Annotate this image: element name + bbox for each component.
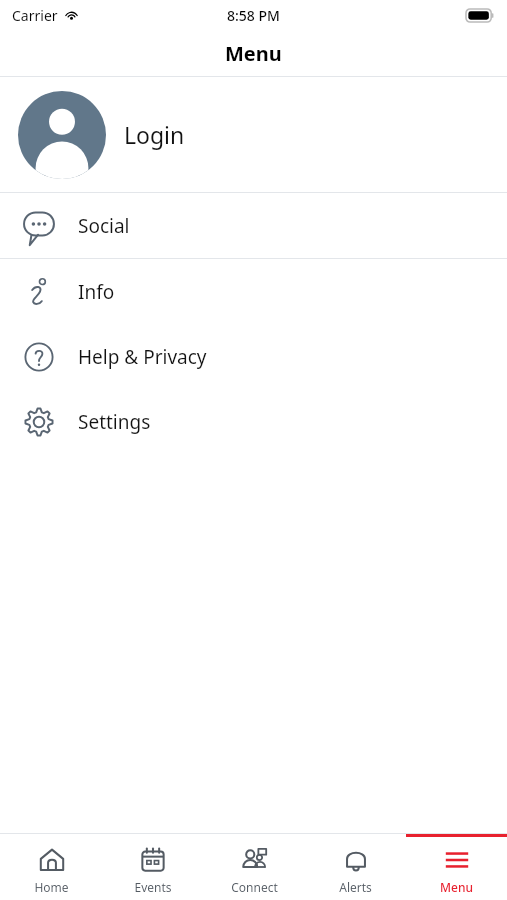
button[interactable]: Info	[0, 259, 507, 324]
staticText: Social	[78, 213, 130, 239]
button[interactable]: Home	[0, 834, 102, 900]
staticText: Connect	[231, 879, 278, 895]
button[interactable]: Social	[0, 193, 507, 258]
staticText: Help & Privacy	[78, 344, 207, 370]
staticText: Login	[124, 119, 185, 150]
staticText: Menu	[440, 879, 473, 895]
staticText: Events	[134, 879, 172, 895]
staticText: Menu	[225, 40, 282, 67]
button[interactable]: Help & Privacy	[0, 324, 507, 389]
staticText: Home	[34, 879, 69, 895]
staticText: Alerts	[339, 879, 372, 895]
button[interactable]: Alerts	[305, 834, 406, 900]
staticText: Carrier	[12, 6, 58, 25]
button[interactable]: Settings	[0, 389, 507, 454]
button[interactable]: Events	[102, 834, 204, 900]
button[interactable]: Login	[0, 77, 507, 192]
staticText: Info	[78, 279, 115, 305]
staticText: Settings	[78, 409, 151, 435]
button[interactable]: Connect	[204, 834, 305, 900]
button[interactable]: Menu	[406, 834, 507, 900]
staticText: 8:58 PM	[227, 6, 280, 25]
